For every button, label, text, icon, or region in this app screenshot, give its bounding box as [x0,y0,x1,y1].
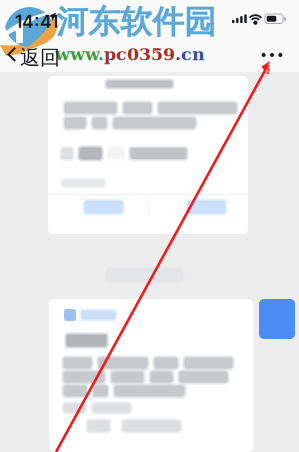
staticText: pc0359 [104,44,175,64]
staticText: 返回 [20,45,60,70]
staticText: www. [55,44,104,64]
button[interactable]: More [255,41,289,69]
staticText: .cn [175,44,205,64]
staticText: 河东软件园 [56,2,216,42]
staticText: 14:41 [15,11,58,32]
button[interactable]: Back [0,38,60,70]
button[interactable]: Shared card [48,76,248,234]
button[interactable]: Article card [49,299,253,452]
